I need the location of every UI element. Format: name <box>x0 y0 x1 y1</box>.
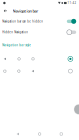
button[interactable]: Home <box>36 130 43 138</box>
button[interactable] <box>0 65 79 77</box>
button[interactable]: Recents <box>57 130 65 138</box>
staticText: Navigationbar <box>13 8 39 13</box>
button[interactable]: Accessibility menu <box>74 104 79 114</box>
button[interactable]: Back <box>0 6 13 15</box>
button[interactable]: Hidden Navigation <box>0 27 79 37</box>
button[interactable]: Back <box>14 130 22 138</box>
button[interactable]: Navigation bar can be hidden <box>0 16 79 27</box>
staticText: Hidden Navigation <box>2 30 28 34</box>
button[interactable] <box>0 53 79 65</box>
staticText: 11:42 <box>67 1 76 5</box>
staticText: Navigation bar can be hidden <box>2 20 43 23</box>
staticText: Navigation bar style <box>2 43 31 47</box>
